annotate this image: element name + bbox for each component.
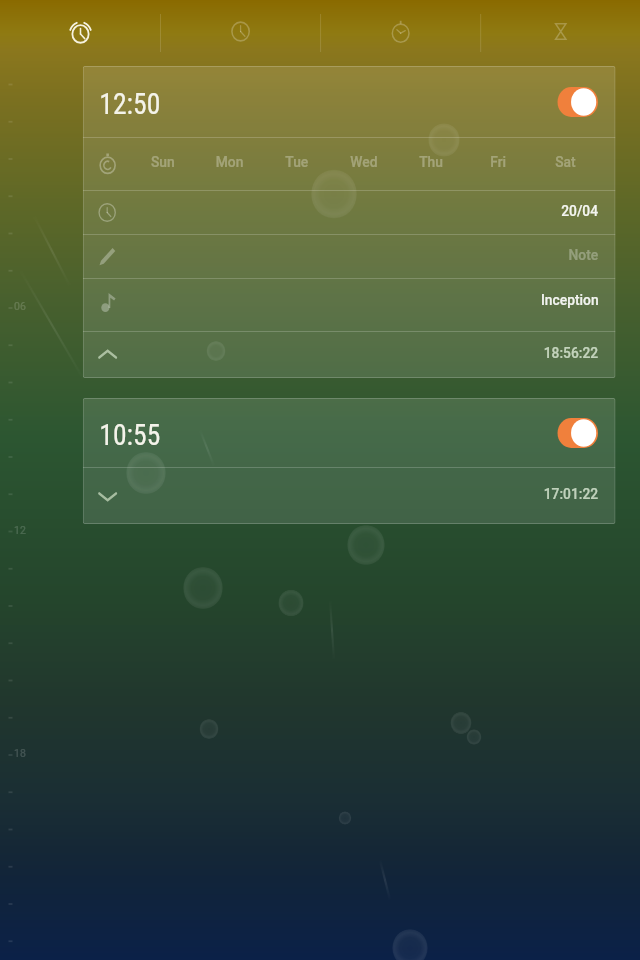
button[interactable]: 10:55 xyxy=(83,398,615,467)
staticText: Note xyxy=(569,246,599,264)
staticText: 12 xyxy=(14,524,26,536)
staticText: Tue xyxy=(263,153,330,171)
button[interactable]: Toggle alarm xyxy=(557,87,598,117)
button[interactable]: Note xyxy=(83,235,615,278)
button[interactable]: Toggle alarm xyxy=(557,418,598,448)
staticText: Inception xyxy=(541,291,599,309)
staticText: Wed xyxy=(330,153,397,171)
button[interactable]: 12:50 xyxy=(83,66,615,137)
button[interactable]: Alarms xyxy=(0,0,160,65)
staticText: 06 xyxy=(14,300,26,312)
staticText: 20/04 xyxy=(561,202,599,220)
staticText: 18:56:22 xyxy=(544,344,599,362)
staticText: 12:50 xyxy=(99,86,161,121)
button[interactable]: 20/04 xyxy=(83,191,615,234)
staticText: 10:55 xyxy=(99,417,161,452)
staticText: Thu xyxy=(397,153,465,171)
staticText: Sat xyxy=(532,153,599,171)
button[interactable]: Inception xyxy=(83,279,615,331)
staticText: Sun xyxy=(130,153,196,171)
button[interactable]: Clock xyxy=(161,0,320,65)
button[interactable]: Collapse xyxy=(83,332,615,378)
staticText: 18 xyxy=(14,747,26,759)
button[interactable]: Sun xyxy=(83,138,615,190)
staticText: Fri xyxy=(465,153,532,171)
button[interactable]: Expand xyxy=(83,468,615,524)
button[interactable]: Stopwatch xyxy=(321,0,480,65)
button[interactable]: Timer xyxy=(481,0,640,65)
staticText: Mon xyxy=(196,153,263,171)
staticText: 17:01:22 xyxy=(544,485,599,503)
